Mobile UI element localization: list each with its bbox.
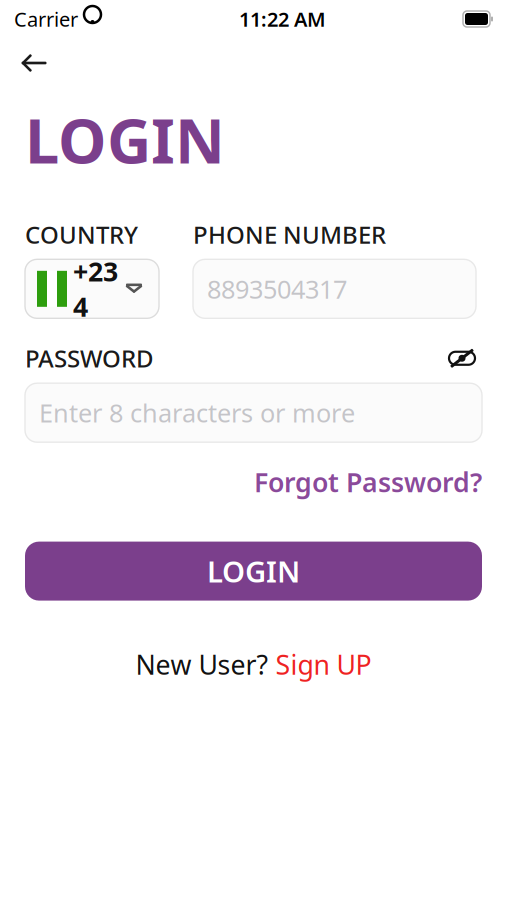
button[interactable]: Phone number field (193, 259, 476, 318)
staticText: PHONE NUMBER (193, 218, 386, 250)
button[interactable]: LOGIN (25, 542, 482, 601)
staticText: Enter 8 characters or more (39, 396, 355, 429)
button[interactable]: Sign UP (275, 647, 371, 682)
button[interactable]: Forgot Password? (254, 464, 482, 500)
staticText: LOGIN (207, 552, 300, 591)
staticText: COUNTRY (25, 218, 138, 250)
button[interactable]: Back (12, 41, 56, 85)
staticText: PASSWORD (25, 342, 154, 374)
staticText: LOGIN (25, 99, 225, 180)
staticText: Sign UP (275, 647, 371, 682)
button[interactable]: Password field (25, 383, 482, 442)
staticText: +234 (73, 253, 118, 324)
staticText: New User? (135, 647, 275, 682)
staticText: Forgot Password? (254, 464, 482, 500)
staticText: 11:22 AM (239, 6, 326, 32)
button[interactable]: Select country code (25, 259, 159, 318)
staticText: 8893504317 (207, 272, 347, 306)
staticText: Carrier (14, 6, 78, 32)
button[interactable]: Show password (442, 344, 482, 372)
